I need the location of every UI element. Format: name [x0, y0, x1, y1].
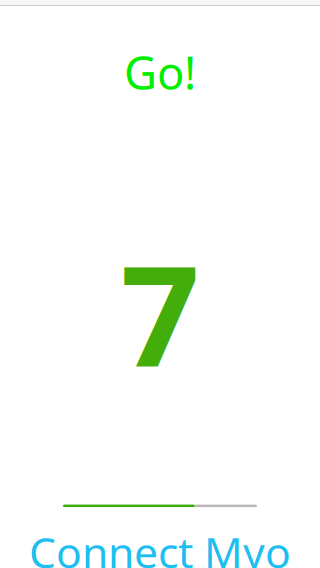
button[interactable]: Back — [0, 0, 98, 9]
button[interactable]: Connect Myo — [9, 515, 311, 568]
staticText: Connect Myo — [29, 523, 291, 568]
staticText: Go! — [124, 42, 196, 102]
staticText: 7 — [120, 220, 199, 404]
